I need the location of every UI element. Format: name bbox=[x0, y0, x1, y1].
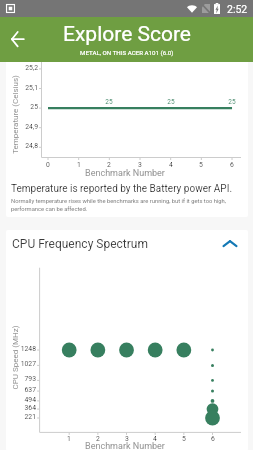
staticText: 1027 bbox=[20, 360, 36, 368]
staticText: 364 bbox=[24, 404, 36, 412]
button[interactable]: Back bbox=[0, 21, 36, 57]
staticText: Temperature (Celsius) bbox=[11, 75, 20, 154]
staticText: 5 bbox=[182, 435, 186, 443]
button[interactable]: CPU Frequency Spectrum bbox=[6, 230, 248, 258]
staticText: 4 bbox=[153, 435, 157, 443]
staticText: 4 bbox=[169, 161, 173, 169]
staticText: Normally temperature rises while the ben… bbox=[11, 198, 226, 213]
staticText: 25 bbox=[30, 103, 38, 111]
staticText: 25 bbox=[167, 98, 175, 106]
staticText: 494 bbox=[24, 396, 36, 404]
staticText: 2 bbox=[107, 161, 111, 169]
staticText: 25 bbox=[105, 98, 113, 106]
staticText: 637 bbox=[24, 386, 36, 394]
staticText: METAL, ON THIS ACER A101 (6.0) bbox=[80, 49, 174, 56]
staticText: 5 bbox=[199, 161, 203, 169]
staticText: 793 bbox=[24, 375, 36, 383]
staticText: 25,2 bbox=[25, 64, 38, 72]
staticText: 2:52 bbox=[227, 3, 248, 15]
staticText: 3 bbox=[138, 161, 142, 169]
staticText: Benchmark Number bbox=[85, 168, 165, 179]
staticText: 1 bbox=[77, 161, 81, 169]
staticText: Benchmark Number bbox=[85, 441, 165, 450]
staticText: CPU Frequency Spectrum bbox=[12, 237, 148, 251]
staticText: 24,9 bbox=[25, 123, 38, 131]
staticText: 24,8 bbox=[25, 142, 38, 150]
staticText: 1248 bbox=[20, 345, 36, 353]
staticText: Temperature is reported by the Battery p… bbox=[11, 183, 233, 195]
staticText: CPU Speed (MHz) bbox=[10, 325, 19, 389]
staticText: Explore Score bbox=[63, 22, 191, 47]
staticText: 0 bbox=[46, 161, 50, 169]
staticText: 25 bbox=[228, 98, 236, 106]
staticText: 25,1 bbox=[25, 84, 38, 92]
staticText: 3 bbox=[125, 435, 129, 443]
staticText: 1 bbox=[67, 435, 71, 443]
staticText: 2 bbox=[96, 435, 100, 443]
staticText: 221 bbox=[24, 413, 36, 421]
staticText: 6 bbox=[211, 435, 215, 443]
staticText: 6 bbox=[230, 161, 234, 169]
